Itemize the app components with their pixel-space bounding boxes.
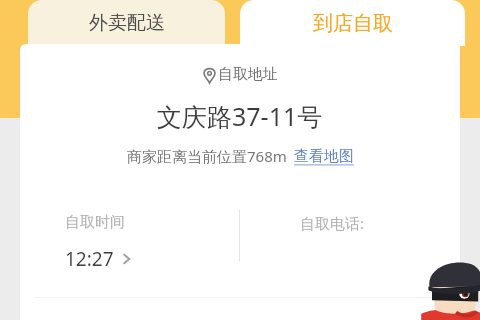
button[interactable]: 自取时间 [20,206,239,292]
staticText: 到店自取 [313,11,393,36]
staticText: 自取地址 [218,65,278,84]
button[interactable]: 到店自取 [240,0,465,46]
button[interactable]: 外卖配送 [28,0,225,46]
staticText: 查看地图 [294,147,354,166]
staticText: 商家距离当前位置768m [127,146,287,166]
button[interactable]: 查看地图 [294,147,354,166]
staticText: 自取电话: [300,213,365,233]
staticText: 自取时间 [65,213,125,232]
staticText: 外卖配送 [89,11,165,35]
staticText: 12:27 [65,246,114,272]
button[interactable]: 自取电话: [240,206,460,292]
staticText: 文庆路37-11号 [157,99,323,133]
